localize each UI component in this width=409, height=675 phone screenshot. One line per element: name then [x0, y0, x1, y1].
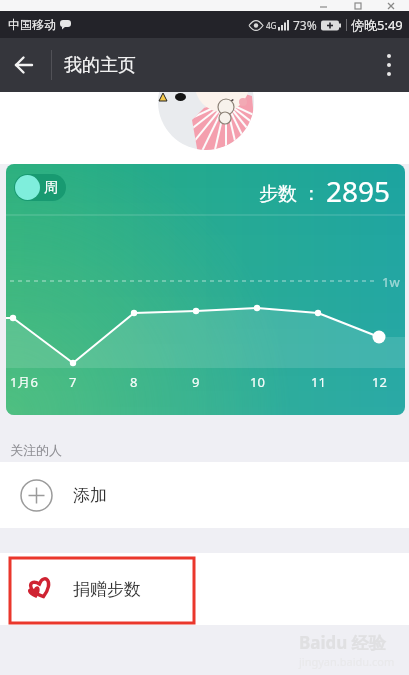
staticText: 12	[372, 373, 387, 391]
staticText: 4G	[266, 20, 277, 31]
button[interactable]: 周	[14, 174, 66, 201]
staticText: 7	[69, 373, 77, 391]
staticText: 1月6	[10, 373, 38, 391]
staticText: 添加	[73, 485, 107, 506]
staticText: 2895	[326, 172, 391, 210]
staticText: Baidu 经验	[299, 631, 386, 654]
staticText: 关注的人	[10, 442, 62, 458]
staticText: 11	[311, 373, 326, 391]
staticText: 中国移动	[8, 17, 56, 32]
staticText: 9	[192, 373, 200, 391]
staticText: 傍晚5:49	[351, 16, 403, 34]
staticText: 8	[130, 373, 138, 391]
staticText: 捐赠步数	[73, 579, 141, 600]
button[interactable]: 添加	[0, 462, 409, 528]
staticText: 步数 ：	[259, 180, 326, 206]
button[interactable]	[369, 38, 409, 92]
staticText: jingyan.baidu.com	[299, 654, 395, 669]
staticText: 73%	[293, 17, 317, 33]
button[interactable]	[0, 38, 48, 92]
staticText: 1w	[382, 273, 400, 291]
button[interactable]: 捐赠步数	[0, 553, 409, 625]
staticText: 10	[250, 373, 265, 391]
staticText: 我的主页	[64, 54, 136, 77]
staticText: 周	[44, 179, 58, 197]
